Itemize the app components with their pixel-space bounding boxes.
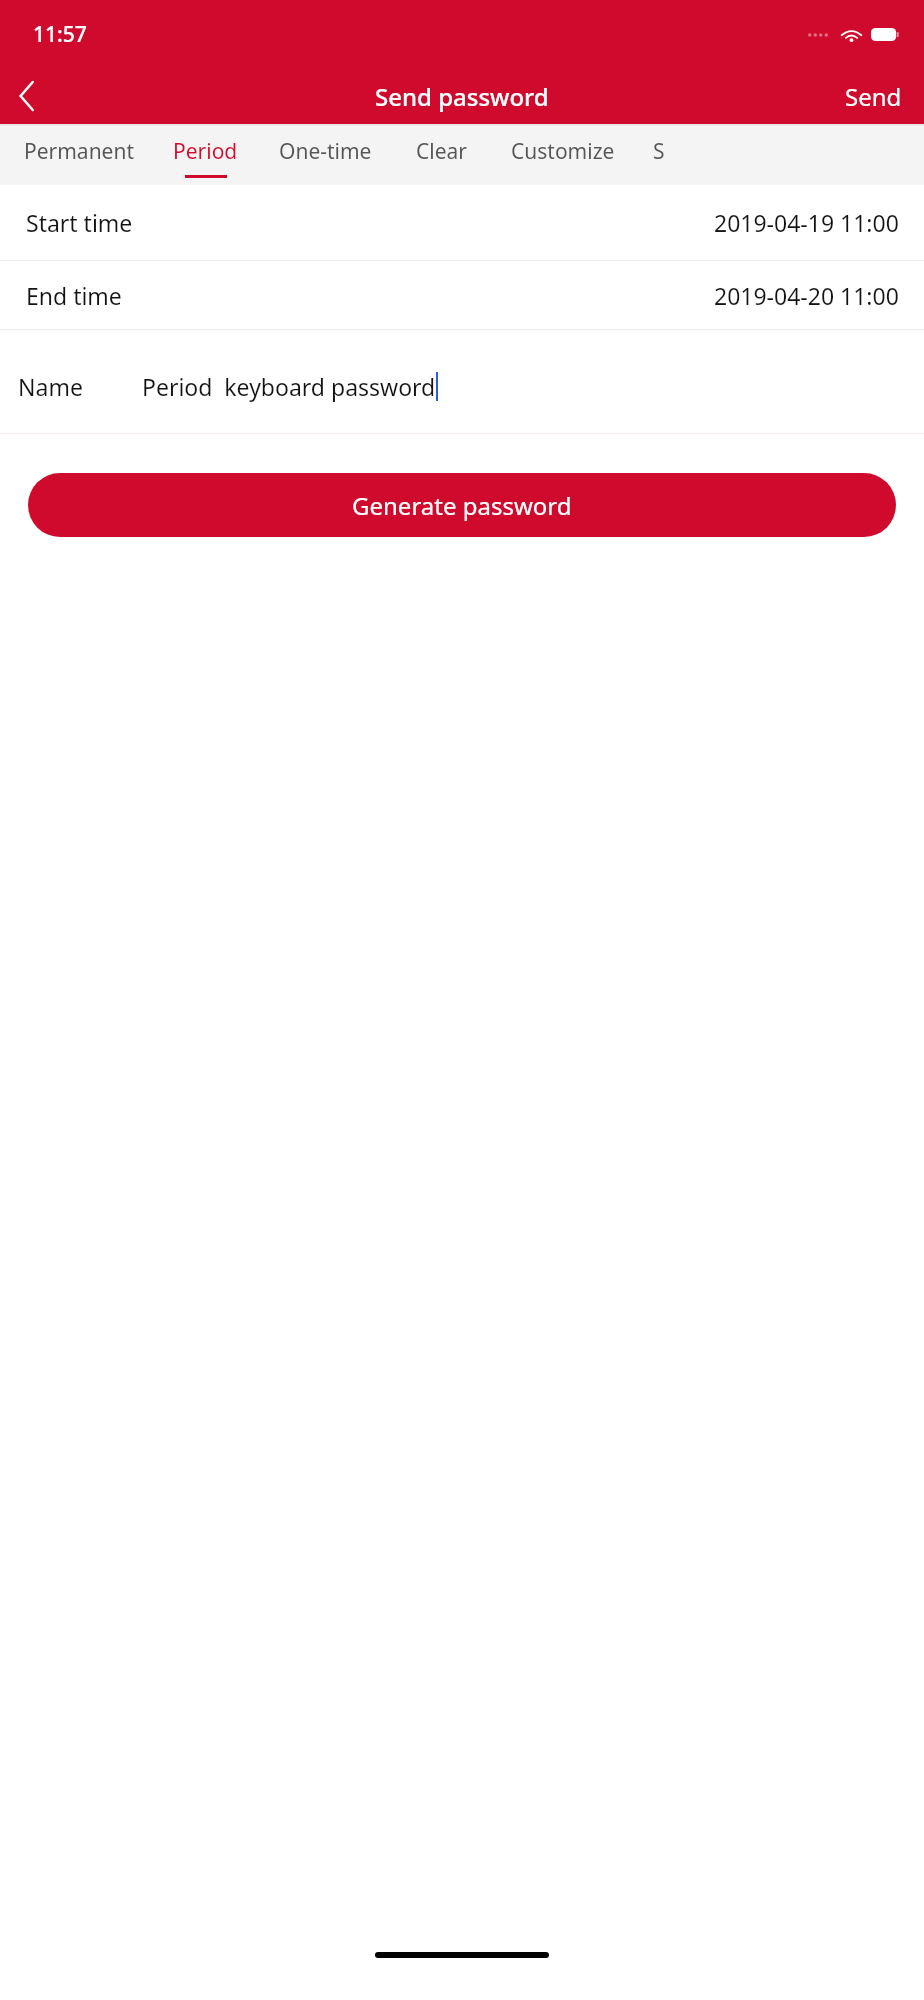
staticText: Clear [416,137,467,166]
staticText: Send [845,80,902,113]
staticText: Permanent [24,137,135,166]
button[interactable]: Name [0,339,924,433]
button[interactable]: Back [0,69,54,123]
button[interactable]: Start time [0,185,924,260]
staticText: 11:57 [33,20,87,49]
button[interactable]: Send [823,70,924,123]
staticText: Send password [375,80,549,113]
button[interactable]: End time [0,261,924,329]
button[interactable]: One-time [255,126,395,185]
staticText: S [653,137,665,166]
button[interactable]: Clear [395,126,487,185]
staticText: Period keyboard password [142,371,436,402]
staticText: Start time [26,207,133,238]
staticText: Generate password [352,489,572,522]
staticText: One-time [279,137,372,166]
staticText: Name [18,371,83,402]
button[interactable]: Customize [487,126,639,185]
staticText: 2019-04-20 11:00 [714,280,899,311]
staticText: Customize [511,137,615,166]
button[interactable]: Generate password [28,473,896,537]
staticText: Period [173,137,238,166]
button[interactable]: S [639,126,679,185]
button[interactable]: Permanent [3,126,155,185]
staticText: 2019-04-19 11:00 [714,207,899,238]
button[interactable]: Period [155,126,255,185]
staticText: End time [26,280,122,311]
